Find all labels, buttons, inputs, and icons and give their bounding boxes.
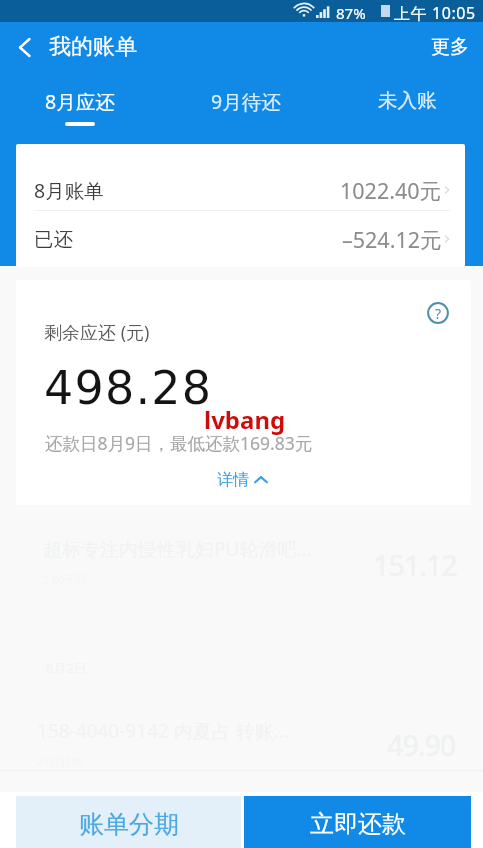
button[interactable]: 未入账: [331, 72, 483, 120]
staticText: 已还: [34, 227, 73, 252]
button[interactable]: 详情: [209, 466, 276, 494]
staticText: 151.12: [373, 545, 457, 584]
staticText: –524.12元: [342, 225, 442, 254]
button[interactable]: 立即还款: [244, 796, 471, 848]
staticText: 8月账单: [34, 177, 104, 204]
button[interactable]: 9月待还: [160, 72, 331, 122]
staticText: 未入账: [378, 88, 437, 113]
staticText: lvbang: [204, 403, 286, 436]
button[interactable]: 已还: [16, 211, 465, 267]
staticText: 498.28: [44, 361, 213, 415]
staticText: ?: [435, 304, 442, 323]
staticText: 还款日8月9日，最低还款169.83元: [45, 431, 313, 455]
staticText: 1022.40元: [340, 176, 442, 205]
button[interactable]: 账单分期: [16, 796, 241, 848]
button[interactable]: 更多: [415, 22, 483, 72]
button[interactable]: 8月应还: [0, 72, 160, 126]
staticText: 剩余应还 (元): [44, 320, 150, 345]
button[interactable]: Back: [0, 22, 49, 72]
staticText: 立即还款: [310, 809, 406, 839]
staticText: 更多: [431, 35, 469, 59]
staticText: 49.90: [387, 725, 456, 764]
staticText: 8月应还: [45, 88, 115, 115]
staticText: 详情: [217, 470, 249, 490]
staticText: 账单分期: [79, 809, 179, 840]
button[interactable]: Help: [423, 298, 453, 328]
staticText: 我的账单: [49, 33, 137, 61]
staticText: 上午 10:05: [394, 2, 476, 24]
button[interactable]: 8月账单: [16, 144, 465, 210]
staticText: 87%: [336, 3, 366, 23]
staticText: 9月待还: [211, 88, 281, 115]
